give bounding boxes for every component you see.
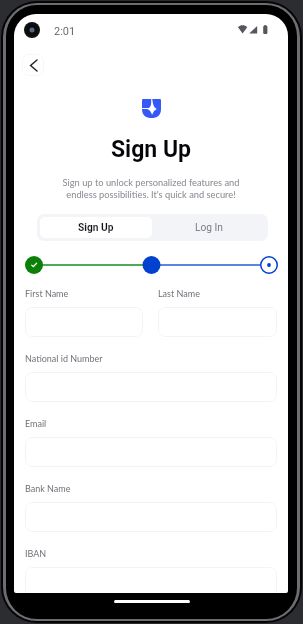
staticText: Bank Name <box>25 483 71 494</box>
button[interactable] <box>25 437 277 467</box>
button[interactable] <box>25 502 277 532</box>
staticText: First Name <box>25 288 69 299</box>
staticText: 2:01 <box>54 25 76 38</box>
button[interactable]: Back <box>22 54 44 76</box>
staticText: National id Number <box>25 353 103 364</box>
staticText: Sign Up <box>14 136 288 163</box>
button[interactable]: Log In <box>152 217 265 238</box>
button[interactable] <box>25 372 277 402</box>
staticText: Email <box>25 418 47 429</box>
staticText: Sign Up <box>78 222 114 234</box>
button[interactable]: Sign Up <box>40 217 152 238</box>
staticText: Log In <box>195 222 223 234</box>
button[interactable] <box>25 307 143 337</box>
staticText: Last Name <box>158 288 200 299</box>
staticText: IBAN <box>25 548 47 559</box>
button[interactable] <box>158 307 277 337</box>
staticText: Sign up to unlock personalized features … <box>14 177 288 200</box>
